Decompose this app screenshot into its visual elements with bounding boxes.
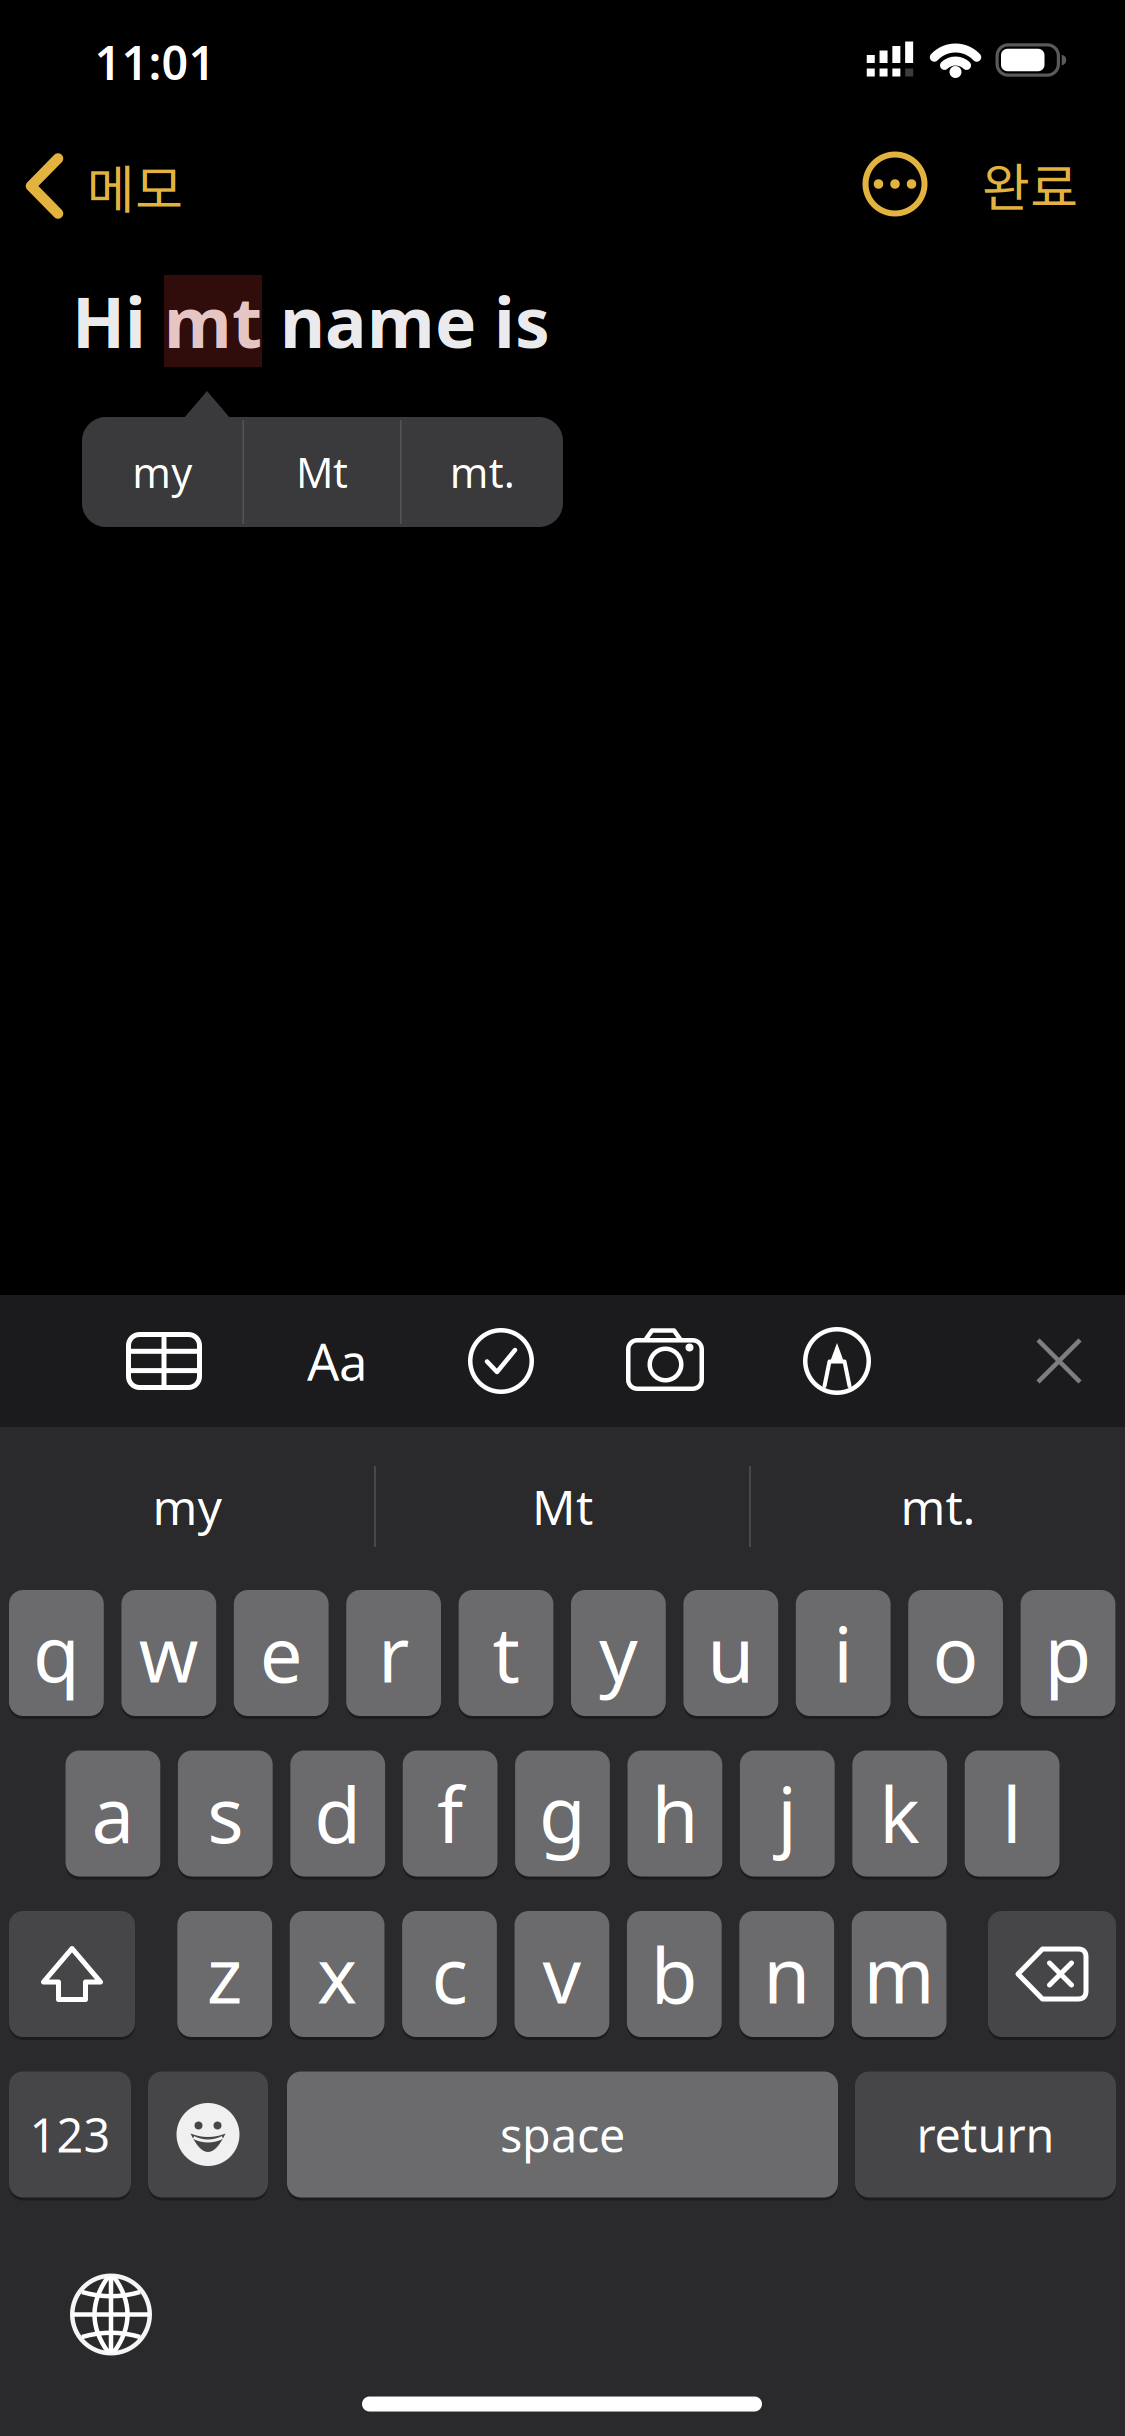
staticText: m: [864, 1923, 935, 2024]
staticText: a: [91, 1763, 134, 1864]
button[interactable]: Next keyboard: [70, 2273, 152, 2355]
button[interactable]: Emoji: [148, 2071, 268, 2197]
button[interactable]: Markup: [803, 1327, 871, 1395]
button[interactable]: Done: [982, 146, 1078, 222]
button[interactable]: Checklist: [468, 1328, 534, 1394]
button[interactable]: Back to Notes: [27, 148, 183, 224]
button[interactable]: Mt: [244, 417, 400, 527]
staticText: k: [879, 1763, 920, 1864]
staticText: t: [492, 1602, 519, 1703]
button[interactable]: Mt: [376, 1427, 749, 1586]
button[interactable]: Dismiss keyboard: [1038, 1340, 1080, 1382]
staticText: h: [651, 1763, 698, 1864]
button[interactable]: l: [965, 1750, 1059, 1876]
button[interactable]: More: [862, 151, 927, 216]
button[interactable]: r: [346, 1590, 441, 1716]
staticText: name is: [262, 275, 550, 367]
button[interactable]: o: [908, 1590, 1003, 1716]
staticText: return: [916, 2103, 1054, 2165]
staticText: Mt: [296, 445, 348, 499]
button[interactable]: Camera: [626, 1327, 708, 1391]
staticText: mt.: [450, 445, 515, 499]
button[interactable]: Insert table: [126, 1332, 202, 1390]
staticText: b: [651, 1923, 698, 2024]
button[interactable]: h: [627, 1750, 722, 1876]
button[interactable]: p: [1021, 1590, 1115, 1716]
staticText: l: [1002, 1763, 1022, 1864]
button[interactable]: u: [683, 1590, 778, 1716]
staticText: Hi: [72, 275, 164, 367]
staticText: y: [599, 1602, 638, 1703]
button[interactable]: f: [403, 1750, 497, 1876]
button[interactable]: e: [234, 1590, 329, 1716]
staticText: space: [500, 2103, 625, 2165]
staticText: Mt: [532, 1475, 593, 1538]
button[interactable]: Numbers: [9, 2071, 131, 2197]
staticText: e: [260, 1602, 303, 1703]
button[interactable]: return: [855, 2071, 1116, 2197]
staticText: my: [152, 1475, 221, 1538]
button[interactable]: s: [178, 1750, 273, 1876]
button[interactable]: i: [796, 1590, 891, 1716]
staticText: x: [317, 1923, 357, 2024]
staticText: mt: [164, 275, 262, 367]
staticText: s: [207, 1763, 243, 1864]
button[interactable]: b: [627, 1911, 722, 2037]
button[interactable]: t: [459, 1590, 553, 1716]
button[interactable]: m: [852, 1911, 946, 2037]
button[interactable]: y: [571, 1590, 666, 1716]
staticText: my: [132, 445, 192, 499]
staticText: g: [539, 1763, 586, 1864]
button[interactable]: j: [740, 1750, 835, 1876]
button[interactable]: Shift: [9, 1911, 135, 2037]
staticText: 완료: [982, 146, 1078, 222]
staticText: v: [542, 1923, 581, 2024]
staticText: u: [707, 1602, 754, 1703]
button[interactable]: x: [290, 1911, 384, 2037]
staticText: j: [777, 1763, 797, 1864]
staticText: 메모: [87, 148, 183, 224]
staticText: n: [763, 1923, 810, 2024]
button[interactable]: d: [290, 1750, 385, 1876]
button[interactable]: space: [287, 2071, 838, 2197]
button[interactable]: Format: [307, 1327, 367, 1395]
button[interactable]: g: [515, 1750, 610, 1876]
staticText: f: [437, 1763, 463, 1864]
button[interactable]: z: [177, 1911, 272, 2037]
staticText: d: [314, 1763, 361, 1864]
button[interactable]: n: [739, 1911, 834, 2037]
staticText: i: [833, 1602, 853, 1703]
button[interactable]: mt.: [401, 417, 563, 527]
staticText: w: [139, 1602, 199, 1703]
staticText: p: [1044, 1602, 1091, 1703]
button[interactable]: mt.: [751, 1427, 1125, 1586]
staticText: 123: [29, 2103, 110, 2165]
staticText: o: [933, 1602, 979, 1703]
button[interactable]: my: [82, 417, 242, 527]
staticText: Aa: [307, 1327, 367, 1395]
staticText: r: [378, 1602, 409, 1703]
button[interactable]: q: [9, 1590, 104, 1716]
button[interactable]: c: [402, 1911, 497, 2037]
button[interactable]: v: [514, 1911, 609, 2037]
button[interactable]: Delete: [988, 1911, 1116, 2037]
button[interactable]: k: [852, 1750, 947, 1876]
button[interactable]: w: [121, 1590, 216, 1716]
staticText: z: [207, 1923, 243, 2024]
staticText: mt.: [900, 1475, 975, 1538]
button[interactable]: my: [0, 1427, 374, 1586]
staticText: q: [33, 1602, 80, 1703]
staticText: 11:01: [94, 31, 215, 93]
staticText: c: [431, 1923, 467, 2024]
button[interactable]: a: [65, 1750, 160, 1876]
